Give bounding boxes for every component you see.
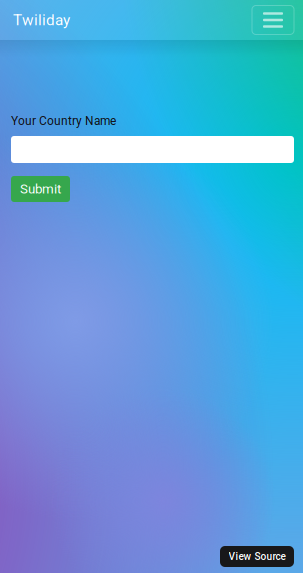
staticText: Submit xyxy=(20,181,61,197)
staticText: Your Country Name xyxy=(11,114,116,128)
button[interactable]: Menu xyxy=(252,5,294,34)
button[interactable]: View Source xyxy=(220,546,294,567)
staticText: Twiliday xyxy=(13,11,70,29)
button[interactable]: Your Country Name xyxy=(11,136,294,163)
button[interactable]: Submit xyxy=(11,176,70,202)
staticText: View Source xyxy=(228,551,285,562)
